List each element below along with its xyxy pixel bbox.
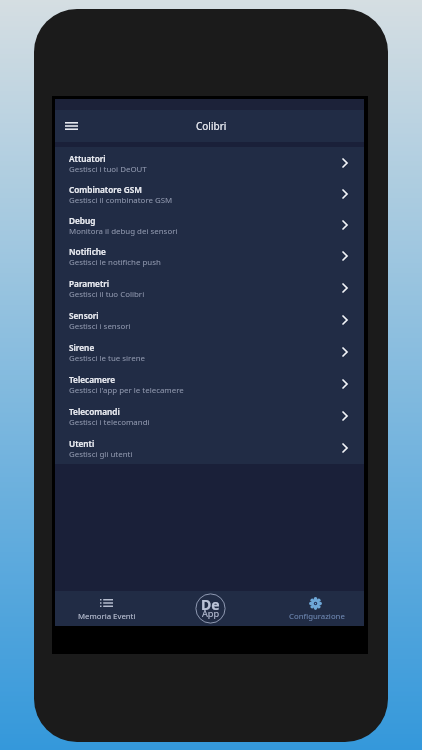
button[interactable]: Notifiche — [55, 240, 364, 272]
staticText: Monitora il debug dei sensori — [69, 226, 178, 237]
staticText: Memoria Eventi — [78, 611, 136, 622]
button[interactable]: Debug — [55, 209, 364, 240]
button[interactable]: Configurazione — [286, 592, 348, 627]
button[interactable]: Sensori — [55, 304, 364, 336]
staticText: Debug — [69, 215, 96, 226]
staticText: Gestisci gli utenti — [69, 449, 133, 460]
staticText: Sirene — [69, 342, 95, 353]
staticText: App — [202, 607, 220, 620]
staticText: Combinatore GSM — [69, 184, 142, 195]
button[interactable]: Telecamere — [55, 368, 364, 400]
staticText: Gestisci il tuo Colibri — [69, 289, 145, 300]
staticText: Colibri — [196, 119, 227, 133]
staticText: De — [201, 595, 220, 614]
button[interactable]: Memoria Eventi — [76, 593, 138, 628]
button[interactable]: Combinatore GSM — [55, 178, 364, 209]
button[interactable]: Utenti — [55, 432, 364, 464]
staticText: Sensori — [69, 310, 99, 321]
staticText: Gestisci le notifiche push — [69, 257, 161, 268]
staticText: Parametri — [69, 278, 110, 289]
staticText: Gestisci l'app per le telecamere — [69, 385, 184, 396]
button[interactable]: Attuatori — [55, 147, 364, 178]
button[interactable]: Parametri — [55, 272, 364, 304]
button[interactable]: Telecomandi — [55, 400, 364, 432]
staticText: Attuatori — [69, 153, 106, 164]
button[interactable]: Menu — [59, 114, 83, 138]
button[interactable]: Sirene — [55, 336, 364, 368]
staticText: Gestisci i tuoi DeOUT — [69, 164, 147, 175]
staticText: Gestisci i telecomandi — [69, 417, 150, 428]
staticText: Gestisci il combinatore GSM — [69, 195, 173, 206]
staticText: Telecamere — [69, 374, 116, 385]
staticText: Telecomandi — [69, 406, 120, 417]
button[interactable]: De App — [195, 593, 226, 624]
staticText: Notifiche — [69, 246, 106, 257]
staticText: Configurazione — [289, 611, 345, 622]
staticText: Gestisci le tue sirene — [69, 353, 145, 364]
staticText: Gestisci i sensori — [69, 321, 131, 332]
staticText: Utenti — [69, 438, 95, 449]
